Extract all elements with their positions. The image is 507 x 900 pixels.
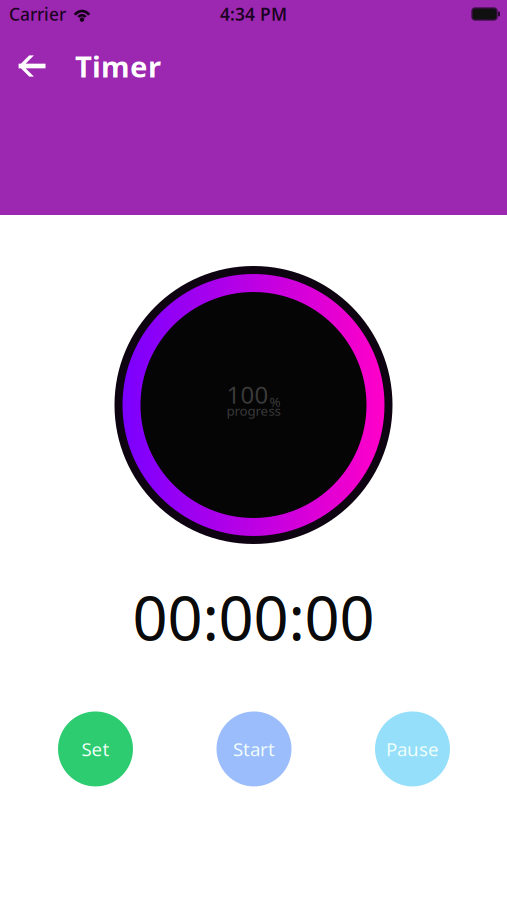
- staticText: Start: [233, 737, 275, 761]
- button[interactable]: Back: [0, 44, 75, 88]
- staticText: 100: [226, 379, 268, 410]
- button[interactable]: Start: [216, 711, 291, 786]
- staticText: Carrier: [9, 2, 66, 25]
- button[interactable]: Set: [58, 711, 133, 786]
- staticText: 00:00:00: [132, 576, 374, 657]
- staticText: Timer: [75, 46, 161, 85]
- staticText: Set: [81, 737, 109, 761]
- staticText: progress: [226, 402, 280, 419]
- staticText: 4:34 PM: [220, 2, 287, 25]
- staticText: %: [269, 393, 280, 410]
- staticText: Pause: [386, 737, 439, 761]
- button[interactable]: Pause: [375, 711, 450, 786]
